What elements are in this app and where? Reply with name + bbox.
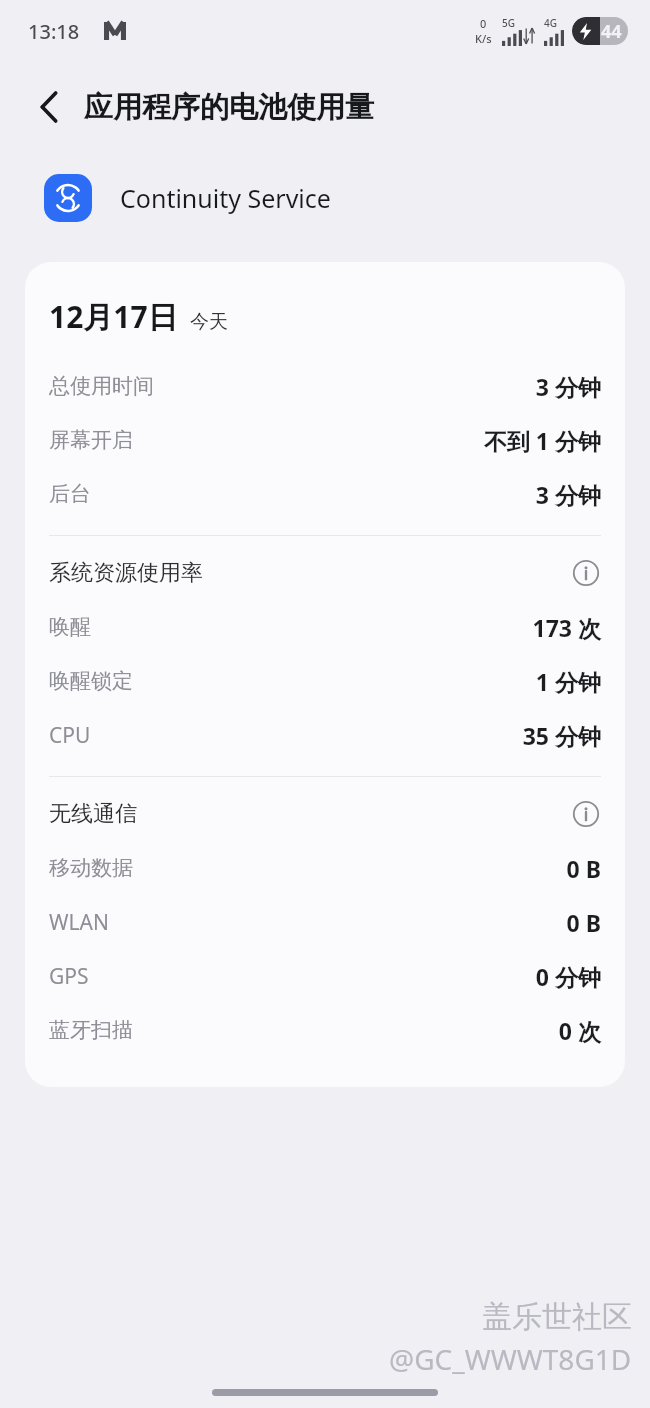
staticText: 173 次 <box>99 612 601 643</box>
button[interactable]: Continuity Service <box>0 152 650 244</box>
staticText: 后台 <box>49 481 91 507</box>
button[interactable]: Back <box>26 84 72 130</box>
staticText: 3 分钟 <box>162 371 601 402</box>
staticText: 5G <box>502 16 515 30</box>
staticText: 0 <box>480 16 487 31</box>
button[interactable]: 屏幕开启 <box>25 413 625 467</box>
staticText: 13:18 <box>28 18 80 45</box>
button[interactable]: 后台 <box>25 467 625 521</box>
staticText: Continuity Service <box>120 181 331 215</box>
staticText: 移动数据 <box>49 855 133 881</box>
staticText: K/s <box>475 31 492 46</box>
staticText: 系统资源使用率 <box>49 559 203 587</box>
button[interactable]: 唤醒锁定 <box>25 654 625 708</box>
staticText: 不到 1 分钟 <box>141 425 601 456</box>
staticText: 3 分钟 <box>99 479 601 510</box>
staticText: 1 分钟 <box>141 666 601 697</box>
button[interactable]: 蓝牙扫描 <box>25 1003 625 1057</box>
staticText: 0 分钟 <box>97 961 601 992</box>
staticText: 应用程序的电池使用量 <box>84 89 374 126</box>
staticText: 12月17日 <box>49 296 178 337</box>
staticText: 0 次 <box>141 1015 601 1046</box>
button[interactable]: CPU <box>25 708 625 762</box>
other: Wireless communication info <box>571 799 601 829</box>
button[interactable]: 移动数据 <box>25 841 625 895</box>
staticText: GPS <box>49 962 89 991</box>
staticText: 0 B <box>117 907 601 938</box>
staticText: 蓝牙扫描 <box>49 1017 133 1043</box>
button[interactable]: 无线通信 <box>25 787 625 841</box>
staticText: 35 分钟 <box>99 720 601 751</box>
staticText: 4G <box>544 16 557 30</box>
button[interactable]: 总使用时间 <box>25 359 625 413</box>
staticText: WLAN <box>49 908 109 937</box>
staticText: CPU <box>49 721 91 750</box>
button[interactable]: 唤醒 <box>25 600 625 654</box>
staticText: 盖乐世社区 <box>482 1298 632 1336</box>
staticText: 屏幕开启 <box>49 427 133 453</box>
staticText: 今天 <box>190 310 228 334</box>
staticText: 0 B <box>141 853 601 884</box>
staticText: 唤醒 <box>49 614 91 640</box>
button[interactable]: WLAN <box>25 895 625 949</box>
staticText: @GC_WWWT8G1D <box>389 1340 632 1378</box>
button[interactable]: 系统资源使用率 <box>25 546 625 600</box>
staticText: 总使用时间 <box>49 373 154 399</box>
other: System resource usage info <box>571 558 601 588</box>
staticText: 无线通信 <box>49 800 137 828</box>
staticText: 44 <box>601 19 622 44</box>
staticText: 唤醒锁定 <box>49 668 133 694</box>
button[interactable]: GPS <box>25 949 625 1003</box>
